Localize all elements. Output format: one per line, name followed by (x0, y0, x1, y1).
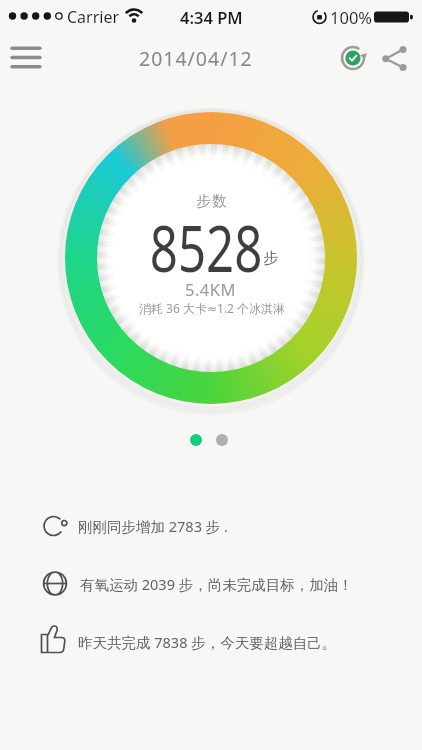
staticText: 步数 (196, 192, 227, 210)
staticText: 100% (330, 6, 373, 28)
staticText: 有氧运动 2039 步，尚未完成目标，加油！ (80, 574, 353, 594)
button[interactable]: 刚刚同步增加 2783 步 . (38, 506, 408, 546)
button[interactable] (336, 41, 370, 75)
button[interactable] (4, 42, 48, 76)
button[interactable] (216, 434, 228, 446)
staticText: 刚刚同步增加 2783 步 . (78, 516, 228, 536)
staticText: Carrier (67, 6, 120, 28)
staticText: 2014/04/12 (139, 45, 253, 72)
button[interactable] (378, 42, 412, 76)
button[interactable] (63, 110, 359, 406)
staticText: 4:34 PM (180, 6, 243, 28)
staticText: 消耗 36 大卡≈1.2 个冰淇淋 (139, 300, 286, 316)
staticText: 步 (263, 249, 278, 268)
staticText: 昨天共完成 7838 步，今天要超越自己。 (78, 632, 337, 652)
button[interactable] (190, 434, 202, 446)
button[interactable]: 昨天共完成 7838 步，今天要超越自己。 (38, 622, 408, 662)
staticText: 5.4KM (185, 278, 236, 300)
staticText: 8528 (150, 205, 263, 285)
button[interactable]: 有氧运动 2039 步，尚未完成目标，加油！ (38, 564, 408, 604)
